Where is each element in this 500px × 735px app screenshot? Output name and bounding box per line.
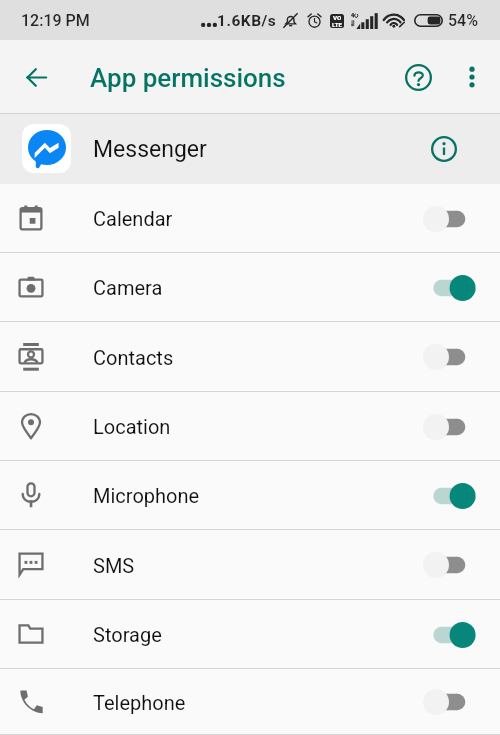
staticText: SMS bbox=[93, 554, 135, 577]
staticText: 1.6KB/s bbox=[217, 12, 277, 30]
button[interactable]: Microphone bbox=[0, 461, 500, 530]
button[interactable]: SMS bbox=[0, 530, 500, 600]
button[interactable]: Permission denied bbox=[424, 547, 476, 583]
staticText: Storage bbox=[93, 623, 162, 646]
button[interactable]: Telephone bbox=[0, 669, 500, 735]
button[interactable]: Permission granted bbox=[424, 478, 476, 514]
button[interactable]: Permission granted bbox=[424, 270, 476, 306]
staticText: Telephone bbox=[93, 691, 186, 714]
button[interactable]: Permission denied bbox=[424, 409, 476, 445]
staticText: Messenger bbox=[93, 136, 207, 163]
staticText: VO bbox=[333, 14, 342, 21]
staticText: Contacts bbox=[93, 346, 174, 369]
button[interactable]: Permission denied bbox=[424, 339, 476, 375]
staticText: Calendar bbox=[93, 207, 173, 230]
button[interactable]: Calendar bbox=[0, 184, 500, 253]
button[interactable]: Permission granted bbox=[424, 617, 476, 653]
button[interactable]: Help bbox=[396, 55, 440, 99]
button[interactable]: Location bbox=[0, 392, 500, 461]
button[interactable]: Permission denied bbox=[424, 684, 476, 720]
staticText: App permissions bbox=[90, 63, 286, 93]
button[interactable]: Permission denied bbox=[424, 201, 476, 237]
staticText: Location bbox=[93, 415, 171, 438]
staticText: Microphone bbox=[93, 484, 200, 507]
staticText: 54% bbox=[448, 11, 478, 30]
button[interactable]: Storage bbox=[0, 600, 500, 669]
button[interactable]: Messenger bbox=[0, 113, 500, 184]
button[interactable]: More options bbox=[454, 59, 490, 95]
button[interactable]: Back bbox=[16, 57, 56, 97]
button[interactable]: Camera bbox=[0, 253, 500, 322]
staticText: Camera bbox=[93, 276, 163, 299]
staticText: 12:19 PM bbox=[21, 11, 90, 30]
button[interactable]: Contacts bbox=[0, 322, 500, 392]
staticText: LTE bbox=[332, 21, 342, 28]
button[interactable]: App info bbox=[422, 127, 466, 171]
